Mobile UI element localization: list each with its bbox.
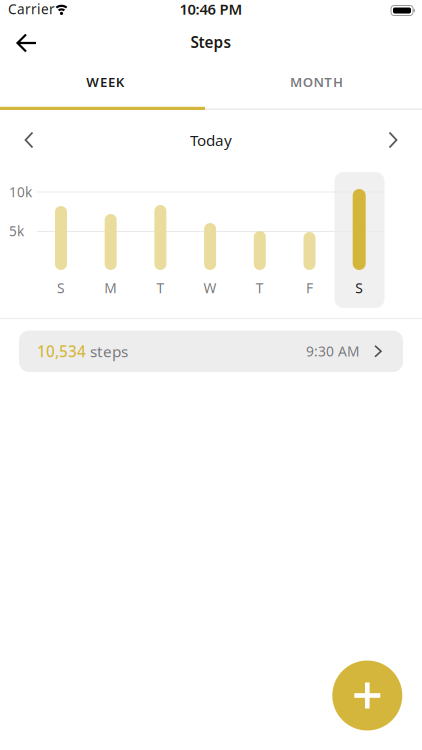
staticText: Today bbox=[190, 130, 232, 150]
staticText: T bbox=[256, 279, 264, 297]
staticText: MONTH bbox=[290, 73, 343, 91]
staticText: Carrier bbox=[8, 0, 55, 18]
staticText: F bbox=[306, 279, 313, 297]
button[interactable]: Back bbox=[5, 23, 49, 63]
staticText: M bbox=[104, 279, 117, 297]
button[interactable]: WEEK bbox=[0, 60, 211, 104]
staticText: steps bbox=[86, 341, 128, 362]
button[interactable]: 10,534 bbox=[19, 330, 403, 372]
staticText: W bbox=[204, 279, 217, 297]
staticText: S bbox=[57, 279, 65, 297]
staticText: 9:30 AM bbox=[306, 342, 360, 361]
button[interactable]: Next week bbox=[373, 120, 413, 160]
staticText: WEEK bbox=[86, 73, 125, 91]
button[interactable]: Previous week bbox=[9, 120, 49, 160]
staticText: 10,534 bbox=[37, 341, 86, 362]
staticText: 10:46 PM bbox=[179, 0, 242, 19]
staticText: 5k bbox=[9, 222, 24, 240]
staticText: 10k bbox=[9, 183, 32, 201]
button[interactable]: Add steps bbox=[332, 660, 402, 730]
button[interactable]: MONTH bbox=[211, 60, 422, 104]
staticText: Steps bbox=[190, 32, 231, 52]
staticText: S bbox=[355, 279, 363, 297]
staticText: T bbox=[156, 279, 164, 297]
